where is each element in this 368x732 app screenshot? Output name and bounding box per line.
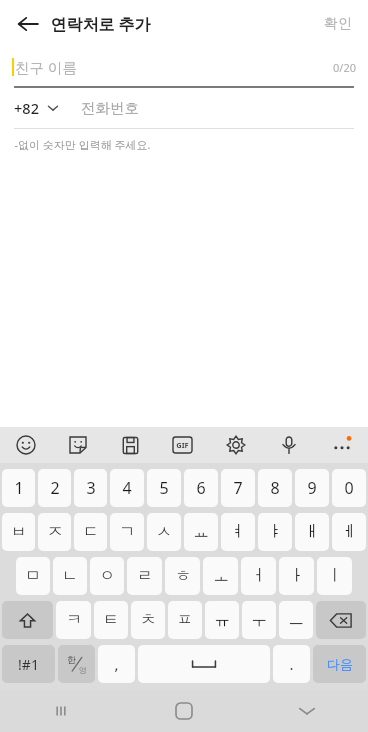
button[interactable]: 전화번호 [81,88,354,128]
staticText: 4 [122,477,132,499]
button[interactable]: ㅋ [56,601,91,639]
staticText: ㅡ [288,610,304,630]
button[interactable]: Back [8,4,48,44]
staticText: ㅛ [193,522,209,542]
button[interactable]: ㅐ [295,513,329,551]
staticText: ㅂ [11,522,27,542]
staticText: ㅁ [25,566,41,586]
staticText: ㅈ [47,522,63,542]
button[interactable]: Backspace [316,601,366,639]
button[interactable]: 다음 [313,645,366,683]
button[interactable]: ㅏ [279,557,314,595]
staticText: ㅣ [327,566,343,586]
button[interactable]: Space [138,645,270,683]
button[interactable]: 3 [74,469,107,507]
staticText: ㅜ [251,610,267,630]
button[interactable]: ㅍ [168,601,202,639]
button[interactable]: ㅇ [90,557,124,595]
button[interactable]: Clipboard [104,427,156,463]
staticText: 확인 [324,15,352,33]
button[interactable]: 확인 [312,7,364,41]
button[interactable]: 5 [147,469,181,507]
staticText: ㅍ [177,610,193,630]
button[interactable]: ㄱ [110,513,144,551]
staticText: 연락처로 추가 [50,13,151,35]
staticText: +82 [14,98,39,118]
staticText: GIF [176,440,189,450]
button[interactable]: , [98,645,135,683]
button[interactable]: Hide keyboard [245,690,368,732]
staticText: ㅌ [103,610,119,630]
button[interactable]: ㅣ [317,557,352,595]
button[interactable]: !#1 [2,645,55,683]
button[interactable]: ㅜ [242,601,276,639]
button[interactable]: ㅎ [165,557,200,595]
button[interactable]: ㅅ [147,513,181,551]
button[interactable]: Recents [0,690,122,732]
staticText: 3 [86,477,96,499]
staticText: ㅇ [99,566,115,586]
staticText: 7 [233,477,243,499]
staticText: ㅠ [214,610,230,630]
button[interactable]: . [273,645,310,683]
button[interactable]: 0 [332,469,366,507]
button[interactable]: 2 [38,469,71,507]
button[interactable]: ㅂ [2,513,35,551]
staticText: 전화번호 [81,99,139,117]
button[interactable]: ㅛ [184,513,218,551]
button[interactable]: Emoji [0,427,52,463]
button[interactable]: 1 [2,469,35,507]
button[interactable]: Shift [2,601,53,639]
button[interactable]: GIF [156,427,209,463]
staticText: ㅎ [175,566,191,586]
button[interactable]: Voice input [262,427,315,463]
button[interactable]: 6 [184,469,218,507]
button[interactable]: Settings [209,427,262,463]
staticText: ㅗ [213,566,229,586]
staticText: 8 [270,477,280,499]
staticText: 5 [159,477,169,499]
button[interactable]: +82 [14,98,63,118]
button[interactable]: More options [315,427,368,463]
staticText: ㅓ [251,566,267,586]
staticText: 친구 이름 [15,57,77,77]
staticText: ㅅ [156,522,172,542]
staticText: ㅑ [267,522,283,542]
button[interactable]: ㅑ [258,513,292,551]
button[interactable]: ㅠ [205,601,239,639]
button[interactable]: ㅡ [279,601,313,639]
staticText: , [114,654,119,674]
staticText: 한 [67,654,76,665]
staticText: ㄴ [62,566,78,586]
button[interactable]: ㅌ [94,601,128,639]
button[interactable]: ㅈ [38,513,71,551]
button[interactable]: Home [122,690,245,732]
staticText: 0/20 [333,60,356,75]
staticText: 6 [196,477,206,499]
button[interactable]: ㄴ [53,557,87,595]
button[interactable]: Korean English toggle [58,645,95,683]
staticText: ㅕ [230,522,246,542]
staticText: ㅋ [66,610,82,630]
button[interactable]: 7 [221,469,255,507]
button[interactable]: 친구 이름 [0,48,368,86]
staticText: 2 [50,477,60,499]
button[interactable]: ㅗ [203,557,238,595]
button[interactable]: 4 [110,469,144,507]
staticText: ㅐ [304,522,320,542]
button[interactable]: ㅊ [131,601,165,639]
button[interactable]: ㅔ [332,513,366,551]
button[interactable]: ㅕ [221,513,255,551]
staticText: ㅔ [341,522,357,542]
button[interactable]: ㄷ [74,513,107,551]
button[interactable]: ㅓ [241,557,276,595]
button[interactable]: 8 [258,469,292,507]
button[interactable]: 9 [295,469,329,507]
staticText: ㄷ [83,522,99,542]
staticText: 0 [344,477,354,499]
button[interactable]: ㄹ [127,557,162,595]
button[interactable]: Sticker [52,427,104,463]
staticText: !#1 [18,655,39,674]
button[interactable]: ㅁ [16,557,50,595]
staticText: ㅏ [289,566,305,586]
